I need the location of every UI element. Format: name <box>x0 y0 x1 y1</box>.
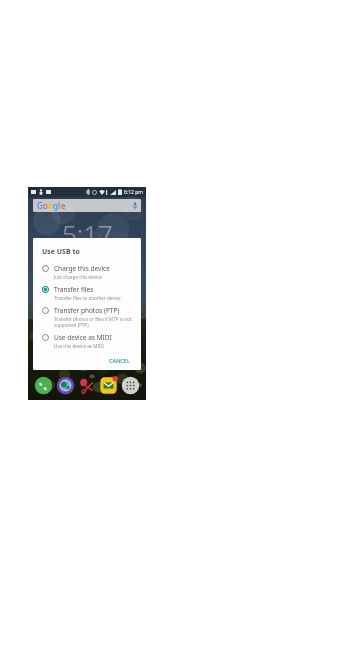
button[interactable]: Messaging <box>99 376 118 395</box>
staticText: Transfer photos or files if MTP is not s… <box>54 316 134 328</box>
staticText: 5:17 <box>62 216 113 246</box>
staticText: G <box>37 200 43 211</box>
staticText: l <box>58 200 61 211</box>
button[interactable]: G <box>33 199 141 212</box>
staticText: Transfer photos (PTP) <box>54 306 120 315</box>
button[interactable]: Transfer files <box>42 285 134 301</box>
staticText: Use device as MIDI <box>54 333 112 342</box>
staticText: CANCEL <box>109 357 130 364</box>
staticText: e <box>61 200 66 211</box>
staticText: Charge this device <box>54 264 110 273</box>
staticText: Use this device as MIDI <box>54 343 104 349</box>
staticText: Transfer files <box>54 285 94 294</box>
button[interactable]: Phone <box>34 376 53 395</box>
button[interactable]: Browser <box>56 376 75 395</box>
button[interactable]: Apps <box>121 376 140 395</box>
other: Voice search <box>133 202 137 209</box>
staticText: Just charge this device <box>54 274 102 280</box>
staticText: g <box>53 200 58 211</box>
button[interactable]: CANCEL <box>105 355 134 366</box>
button[interactable]: Charge this device <box>42 264 134 280</box>
staticText: o <box>43 200 48 211</box>
staticText: o <box>48 200 53 211</box>
button[interactable]: Transfer photos (PTP) <box>42 306 134 328</box>
button[interactable]: Use device as MIDI <box>42 333 134 349</box>
staticText: Transfer files to another device <box>54 295 121 301</box>
staticText: 6:12 pm <box>124 189 143 196</box>
staticText: Use USB to <box>42 247 80 257</box>
button[interactable]: Snapchat <box>78 376 97 395</box>
